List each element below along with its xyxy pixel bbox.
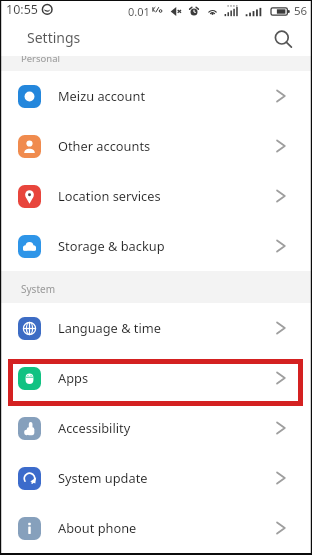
staticText: 56 bbox=[294, 3, 308, 19]
button[interactable]: Location services bbox=[0, 171, 312, 221]
staticText: About phone bbox=[58, 519, 137, 536]
staticText: Meizu account bbox=[58, 87, 146, 104]
staticText: System bbox=[21, 282, 55, 296]
button[interactable]: Search bbox=[271, 27, 295, 51]
staticText: Other accounts bbox=[58, 137, 151, 154]
staticText: 0.01 bbox=[128, 4, 150, 19]
button[interactable]: Storage & backup bbox=[0, 221, 312, 271]
staticText: Storage & backup bbox=[58, 237, 165, 254]
staticText: Accessibility bbox=[58, 419, 131, 436]
button[interactable]: Other accounts bbox=[0, 121, 312, 171]
staticText: Apps bbox=[58, 369, 89, 386]
staticText: Location services bbox=[58, 187, 161, 204]
button[interactable]: Meizu account bbox=[0, 71, 312, 121]
button[interactable]: Language & time bbox=[0, 303, 312, 353]
staticText: Personal bbox=[21, 56, 60, 65]
staticText: 10:55 bbox=[6, 1, 38, 18]
button[interactable]: Apps bbox=[0, 353, 312, 403]
staticText: Language & time bbox=[58, 319, 161, 336]
staticText: Settings bbox=[27, 28, 81, 47]
button[interactable]: About phone bbox=[0, 503, 312, 553]
button[interactable]: System update bbox=[0, 453, 312, 503]
staticText: System update bbox=[58, 469, 148, 486]
button[interactable]: Accessibility bbox=[0, 403, 312, 453]
